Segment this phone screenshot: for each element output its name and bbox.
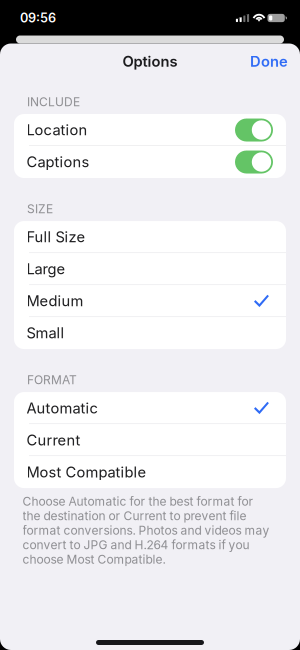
staticText: Large xyxy=(26,260,65,278)
staticText: SIZE xyxy=(27,201,53,216)
staticText: FORMAT xyxy=(27,372,77,387)
staticText: INCLUDE xyxy=(27,94,80,109)
staticText: Current xyxy=(26,431,80,449)
button[interactable]: Medium xyxy=(14,285,286,317)
staticText: Most Compatible xyxy=(26,463,146,481)
staticText: Medium xyxy=(26,292,83,310)
staticText: Choose Automatic for the best format for… xyxy=(22,494,269,567)
button[interactable]: Current xyxy=(14,424,286,456)
staticText: Automatic xyxy=(26,399,97,417)
staticText: Captions xyxy=(26,153,89,171)
button[interactable]: Location xyxy=(14,114,286,146)
button[interactable]: Small xyxy=(14,317,286,349)
button[interactable]: Done xyxy=(244,46,294,77)
staticText: Location xyxy=(26,121,87,139)
staticText: Small xyxy=(26,324,64,342)
staticText: Full Size xyxy=(26,228,85,246)
staticText: Options xyxy=(122,53,177,70)
button[interactable]: Most Compatible xyxy=(14,456,286,488)
staticText: 09:56 xyxy=(20,10,56,26)
button[interactable]: Automatic xyxy=(14,392,286,424)
button[interactable]: Captions xyxy=(14,146,286,178)
button[interactable]: Full Size xyxy=(14,221,286,253)
button[interactable]: Large xyxy=(14,253,286,285)
staticText: Done xyxy=(250,53,288,70)
